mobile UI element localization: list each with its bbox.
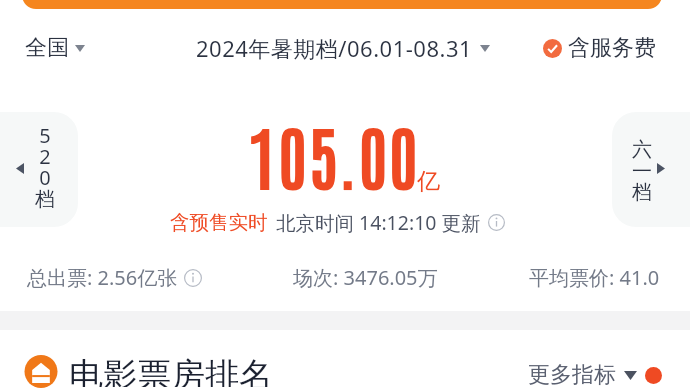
staticText: 六 一 档 — [631, 137, 653, 205]
staticText: 总出票: 2.56亿张 — [27, 264, 178, 291]
other: 电影票房排名 — [24, 355, 58, 388]
button[interactable]: 下一档期 六一档 — [612, 112, 690, 227]
staticText: 105.00 — [248, 109, 420, 198]
staticText: 5 2 0 档 — [34, 122, 56, 212]
staticText: 更多指标 — [528, 361, 616, 388]
staticText: 含预售实时 — [170, 210, 268, 235]
staticText: 电影票房排名 — [69, 354, 273, 387]
staticText: 平均票价: 41.0 — [529, 264, 660, 291]
staticText: 全国 — [25, 34, 69, 62]
staticText: 2024年暑期档/06.01-08.31 — [196, 33, 473, 63]
button[interactable]: 电影票房排名 — [24, 355, 273, 388]
button[interactable]: 全国 — [25, 34, 85, 62]
staticText: 北京时间 14:12:10 更新 — [276, 209, 481, 236]
button[interactable]: 上一档期 520档 — [0, 112, 78, 227]
button[interactable]: 2024年暑期档/06.01-08.31 — [196, 33, 490, 63]
staticText: 场次: 3476.05万 — [293, 264, 438, 291]
staticText: 含服务费 — [568, 34, 656, 62]
staticText: 亿 — [417, 167, 440, 196]
button[interactable]: 更多指标 — [528, 361, 662, 388]
button[interactable]: 含服务费 — [543, 34, 656, 62]
